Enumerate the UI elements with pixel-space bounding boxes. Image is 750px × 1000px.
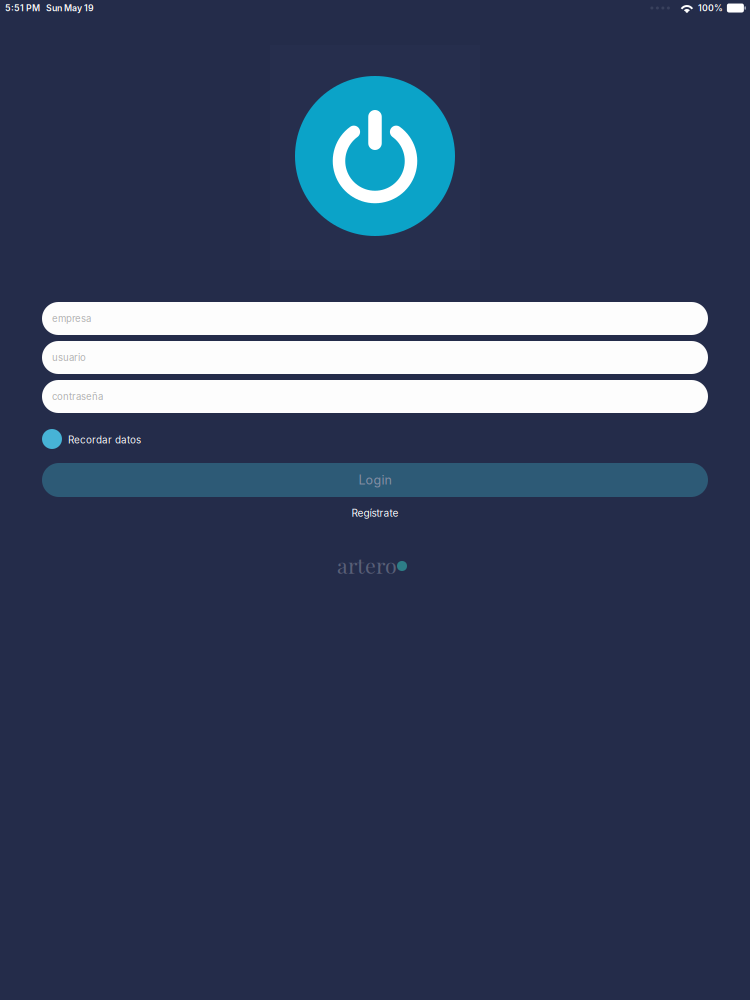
staticText: usuario — [52, 352, 86, 363]
staticText: Recordar datos — [68, 434, 141, 446]
button[interactable]: Regístrate — [351, 503, 398, 523]
button[interactable]: Login — [42, 463, 708, 497]
button[interactable]: empresa — [42, 302, 708, 335]
staticText: 5:51 PM — [5, 3, 40, 13]
staticText: Regístrate — [351, 507, 398, 519]
button[interactable]: usuario — [42, 341, 708, 374]
staticText: artero — [337, 551, 397, 579]
staticText: empresa — [52, 313, 91, 324]
button[interactable]: Recordar datos — [42, 429, 708, 449]
button[interactable]: contraseña — [42, 380, 708, 413]
staticText: Login — [358, 472, 391, 488]
staticText: Sun May 19 — [46, 3, 94, 13]
staticText: contraseña — [52, 391, 103, 402]
staticText: 100% — [698, 3, 723, 13]
